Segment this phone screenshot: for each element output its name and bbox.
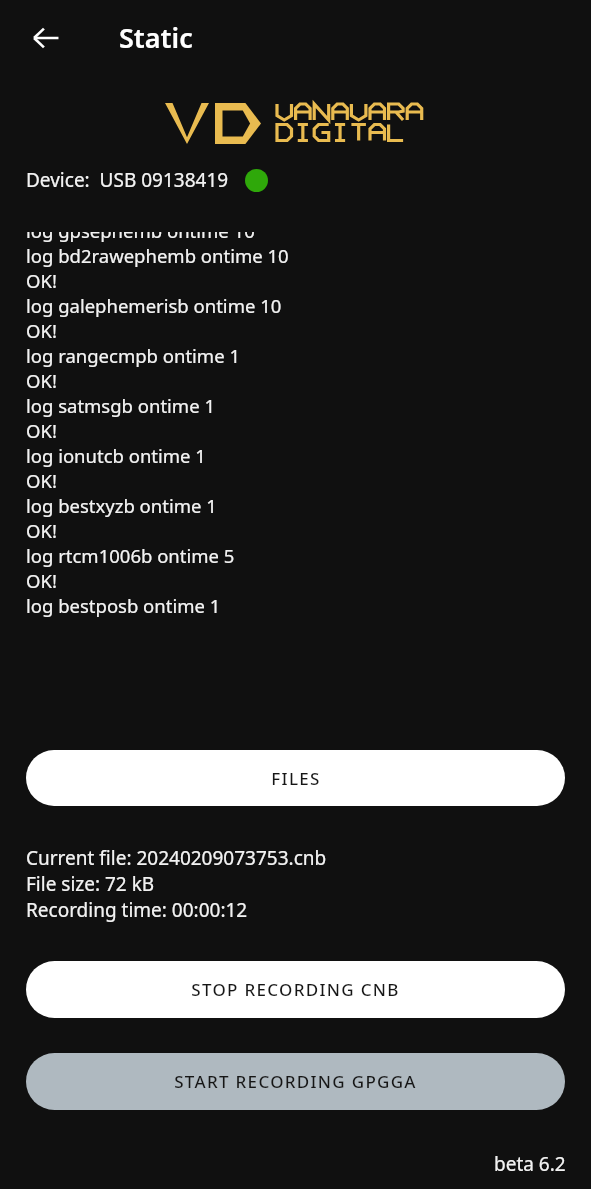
staticText: Current file: 20240209073753.cnb (26, 845, 327, 871)
staticText: OK! (26, 268, 57, 293)
staticText: OK! (26, 568, 57, 593)
staticText: log bestposb ontime 1 (26, 593, 221, 618)
staticText: STOP RECORDING CNB (191, 978, 400, 1001)
button[interactable]: START RECORDING GPGGA (26, 1053, 565, 1110)
staticText: OK! (26, 418, 57, 443)
staticText: OK! (26, 318, 57, 343)
staticText: log bd2rawephemb ontime 10 (26, 243, 289, 268)
button[interactable]: STOP RECORDING CNB (26, 961, 565, 1018)
staticText: log satmsgb ontime 1 (26, 393, 215, 418)
staticText: Static (119, 19, 193, 56)
staticText: log rangecmpb ontime 1 (26, 343, 240, 368)
staticText: log galephemerisb ontime 10 (26, 293, 282, 318)
staticText: OK! (26, 468, 57, 493)
staticText: log bestxyzb ontime 1 (26, 493, 217, 518)
staticText: OK! (26, 518, 57, 543)
staticText: beta 6.2 (494, 1151, 566, 1177)
staticText: Recording time: 00:00:12 (26, 897, 248, 923)
staticText: log gpsephemb ontime 10 (26, 232, 255, 243)
staticText: FILES (271, 767, 321, 790)
staticText: START RECORDING GPGGA (174, 1070, 417, 1093)
button[interactable]: FILES (26, 750, 565, 806)
staticText: log ionutcb ontime 1 (26, 443, 206, 468)
staticText: Device: USB 09138419 (26, 167, 229, 193)
staticText: OK! (26, 368, 57, 393)
staticText: File size: 72 kB (26, 871, 155, 897)
staticText: log rtcm1006b ontime 5 (26, 543, 235, 568)
button[interactable]: Back (22, 14, 70, 62)
